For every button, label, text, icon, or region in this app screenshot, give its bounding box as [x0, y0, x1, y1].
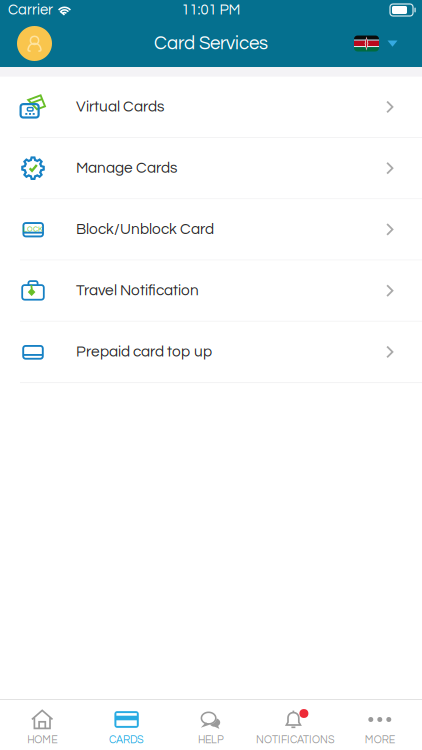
- staticText: Card Services: [154, 34, 268, 53]
- staticText: Block/Unblock Card: [76, 221, 214, 237]
- staticText: Carrier: [8, 2, 53, 17]
- button[interactable]: LOCK: [0, 199, 422, 260]
- staticText: Manage Cards: [76, 160, 177, 176]
- staticText: Travel Notification: [76, 283, 199, 299]
- button[interactable]: HELP: [169, 699, 253, 750]
- staticText: MORE: [365, 734, 395, 745]
- button[interactable]: Profile: [17, 26, 52, 61]
- button[interactable]: Virtual Cards: [0, 77, 422, 138]
- button[interactable]: CARDS: [84, 699, 169, 750]
- button[interactable]: HOME: [0, 699, 84, 750]
- button[interactable]: Travel Notification: [0, 261, 422, 322]
- button[interactable]: Select country: [354, 31, 398, 55]
- button[interactable]: Manage Cards: [0, 138, 422, 199]
- staticText: HOME: [27, 734, 57, 745]
- staticText: NOTIFICATIONS: [256, 734, 335, 745]
- staticText: Virtual Cards: [76, 99, 164, 115]
- staticText: 11:01 PM: [181, 2, 240, 17]
- button[interactable]: Prepaid card top up: [0, 322, 422, 383]
- staticText: Prepaid card top up: [76, 344, 212, 360]
- staticText: CARDS: [109, 734, 144, 745]
- staticText: HELP: [198, 734, 224, 745]
- button[interactable]: MORE: [338, 699, 422, 750]
- button[interactable]: NOTIFICATIONS: [253, 699, 338, 750]
- staticText: LOCK: [23, 225, 43, 233]
